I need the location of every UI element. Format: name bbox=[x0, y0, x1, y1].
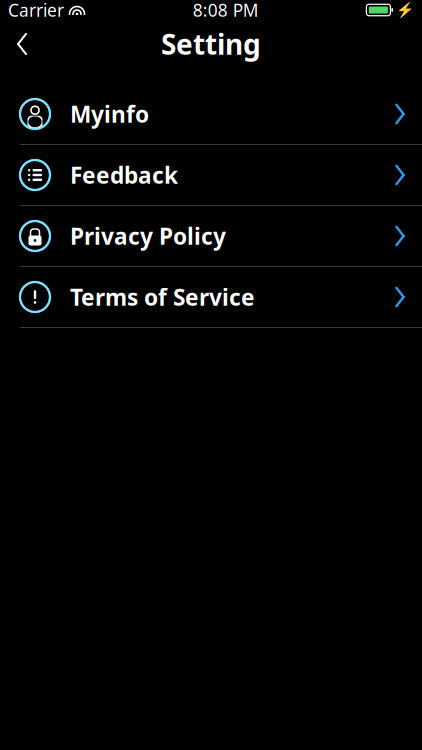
staticText: Myinfo bbox=[70, 99, 149, 129]
staticText: Carrier bbox=[8, 0, 64, 21]
staticText: ⚡ bbox=[396, 2, 414, 18]
button[interactable]: Feedback bbox=[0, 145, 422, 206]
button[interactable]: Terms of Service bbox=[0, 267, 422, 328]
staticText: Setting bbox=[161, 25, 261, 63]
staticText: Terms of Service bbox=[70, 282, 255, 312]
button[interactable]: Privacy Policy bbox=[0, 206, 422, 267]
staticText: Feedback bbox=[70, 160, 178, 190]
staticText: 8:08 PM bbox=[193, 0, 259, 21]
button[interactable]: Back bbox=[0, 22, 44, 66]
button[interactable]: Myinfo bbox=[0, 84, 422, 145]
staticText: Privacy Policy bbox=[70, 221, 226, 251]
